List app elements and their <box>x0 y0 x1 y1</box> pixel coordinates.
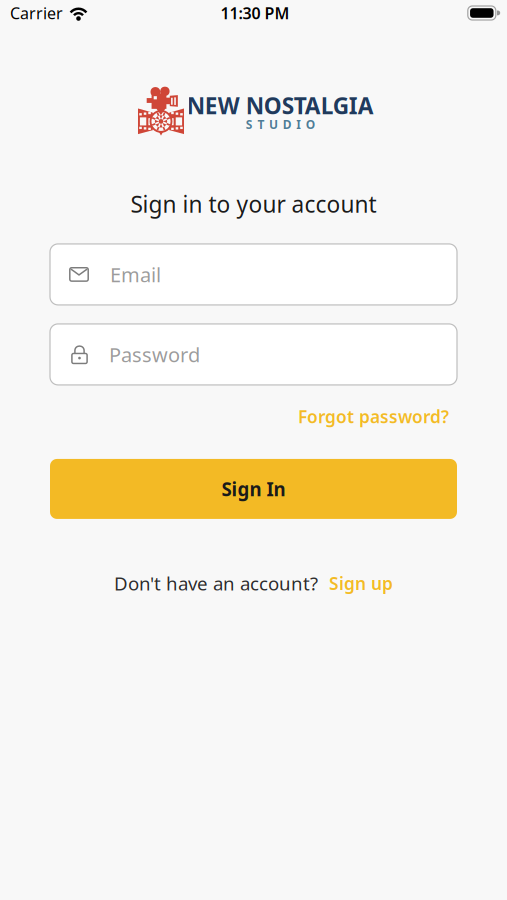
staticText: Don't have an account? <box>114 571 318 596</box>
staticText: Sign up <box>329 572 393 595</box>
staticText: I <box>296 116 301 132</box>
staticText: T <box>257 116 264 132</box>
staticText: Sign in to your account <box>130 189 376 219</box>
staticText: Forgot password? <box>298 405 449 428</box>
staticText: Email <box>110 261 161 288</box>
button[interactable]: Sign In <box>50 459 457 519</box>
staticText: U <box>269 116 278 132</box>
staticText: S <box>246 116 253 132</box>
staticText: Carrier <box>10 2 63 24</box>
button[interactable]: Sign up <box>329 572 393 595</box>
staticText: O <box>306 116 315 132</box>
staticText: D <box>283 116 292 132</box>
staticText: Sign In <box>221 476 285 501</box>
staticText: 11:30 PM <box>220 2 289 24</box>
staticText: NEW NOSTALGIA <box>187 90 374 120</box>
button[interactable]: Forgot password? <box>298 405 457 428</box>
staticText: Password <box>109 341 200 368</box>
